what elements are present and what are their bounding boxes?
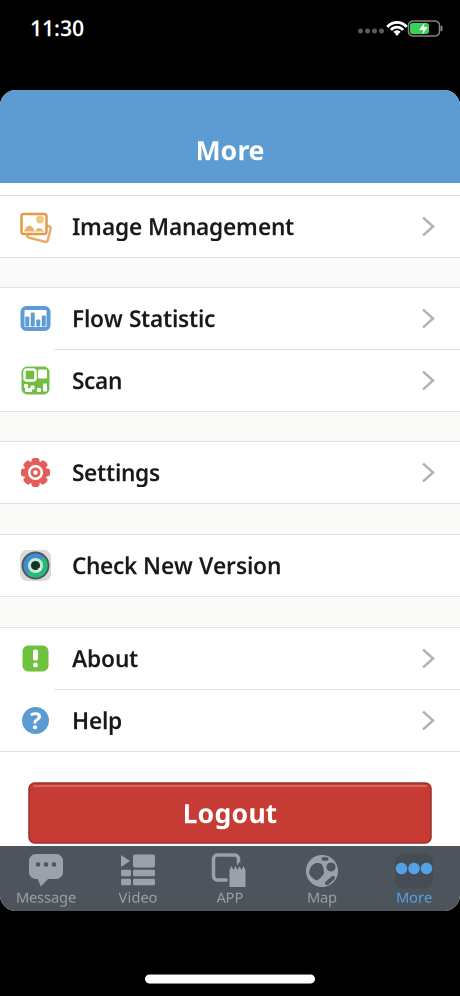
staticText: Logout: [182, 795, 277, 831]
staticText: Map: [307, 887, 337, 907]
staticText: APP: [216, 887, 243, 907]
button[interactable]: ?: [0, 690, 460, 751]
staticText: Message: [16, 887, 76, 907]
button[interactable]: Scan: [0, 350, 460, 411]
button[interactable]: Message: [0, 846, 92, 911]
staticText: Check New Version: [72, 550, 281, 580]
staticText: Video: [118, 887, 157, 907]
staticText: More: [396, 887, 432, 907]
button[interactable]: More: [368, 846, 460, 911]
staticText: Image Management: [72, 211, 294, 241]
button[interactable]: Video: [92, 846, 184, 911]
button[interactable]: About: [0, 628, 460, 689]
staticText: About: [72, 643, 138, 673]
staticText: Settings: [72, 457, 160, 487]
staticText: 11:30: [30, 14, 84, 42]
staticText: Help: [72, 705, 122, 735]
staticText: More: [195, 132, 264, 168]
button[interactable]: Flow Statistic: [0, 288, 460, 349]
staticText: Scan: [72, 365, 122, 395]
staticText: ?: [30, 704, 41, 736]
button[interactable]: APP: [184, 846, 276, 911]
button[interactable]: Settings: [0, 442, 460, 503]
button[interactable]: Map: [276, 846, 368, 911]
button[interactable]: Check New Version: [0, 535, 460, 596]
button[interactable]: Logout: [29, 783, 431, 843]
staticText: Flow Statistic: [72, 303, 215, 333]
button[interactable]: Image Management: [0, 196, 460, 257]
